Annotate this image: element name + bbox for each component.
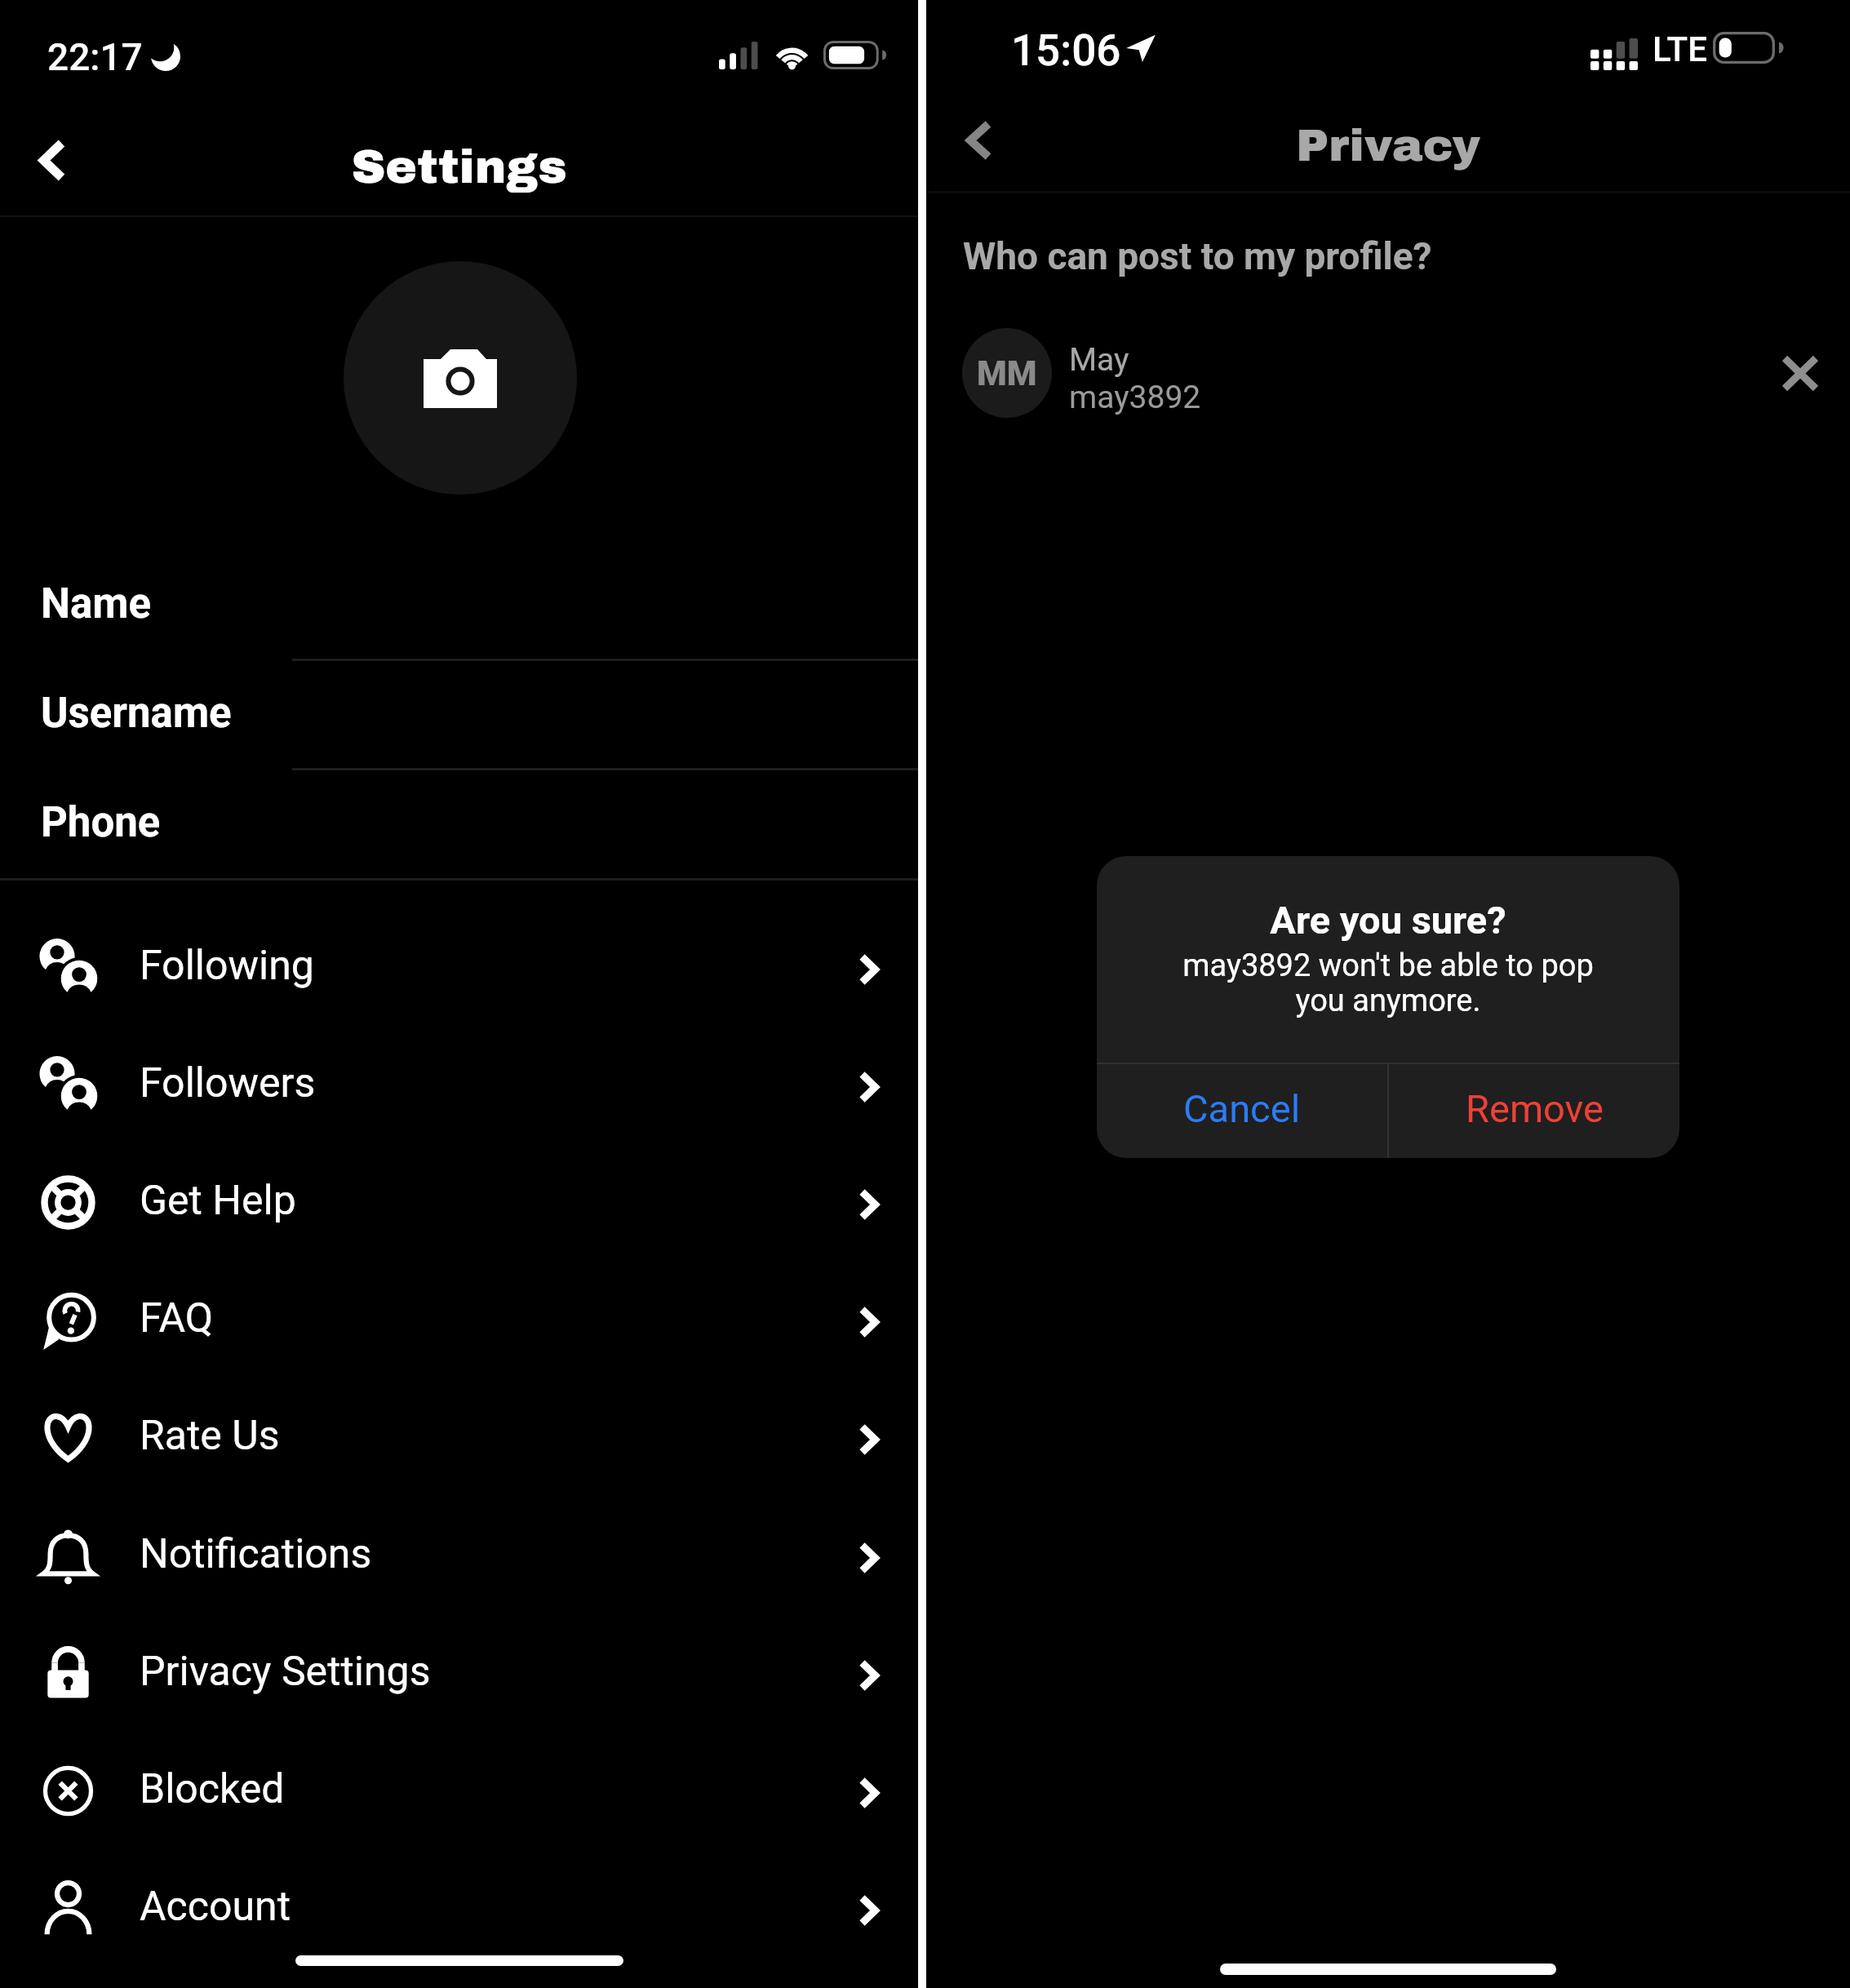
staticText: Privacy Settings [140,1648,431,1696]
button[interactable]: Remove May [1759,332,1841,414]
button[interactable]: Rate Us [0,1378,918,1496]
staticText: May [1069,341,1129,379]
button[interactable]: Phone [0,769,918,878]
staticText: 15:06 [1011,25,1121,76]
staticText: Blocked [140,1765,285,1813]
button[interactable]: Back [11,121,93,199]
staticText: Cancel [1183,1086,1301,1131]
staticText: Remove [1466,1086,1604,1131]
staticText: Privacy [926,121,1850,171]
button[interactable]: FAQ [0,1261,918,1378]
staticText: Rate Us [140,1412,280,1460]
button[interactable]: Username [0,659,918,769]
button[interactable]: Following [0,908,918,1026]
button[interactable]: Followers [0,1026,918,1143]
staticText: Who can post to my profile? [963,234,1432,278]
staticText: Settings [0,141,918,193]
staticText: Name [41,579,151,628]
button[interactable]: Cancel [1097,1064,1387,1158]
staticText: may3892 won't be able to pop you anymore… [1182,947,1594,1018]
button[interactable]: Name [0,550,918,659]
staticText: 22:17 [47,35,143,79]
button[interactable]: Notifications [0,1497,918,1614]
staticText: FAQ [140,1294,214,1342]
staticText: Account [140,1883,291,1931]
staticText: may3892 [1069,379,1201,416]
button[interactable]: Account [0,1849,918,1967]
button[interactable]: Change profile photo [344,261,577,495]
staticText: Phone [41,798,161,847]
staticText: LTE [1653,29,1707,69]
staticText: Are you sure? [1270,898,1506,943]
button[interactable]: Privacy Settings [0,1614,918,1732]
button[interactable]: Back [941,103,1018,178]
staticText: Followers [140,1059,316,1107]
staticText: Username [41,689,232,738]
staticText: Get Help [140,1177,296,1225]
staticText: Notifications [140,1530,372,1578]
button[interactable]: Get Help [0,1143,918,1261]
staticText: Following [140,942,314,990]
button[interactable]: Blocked [0,1732,918,1849]
staticText: MM [977,353,1037,393]
button[interactable]: Remove [1389,1064,1679,1158]
